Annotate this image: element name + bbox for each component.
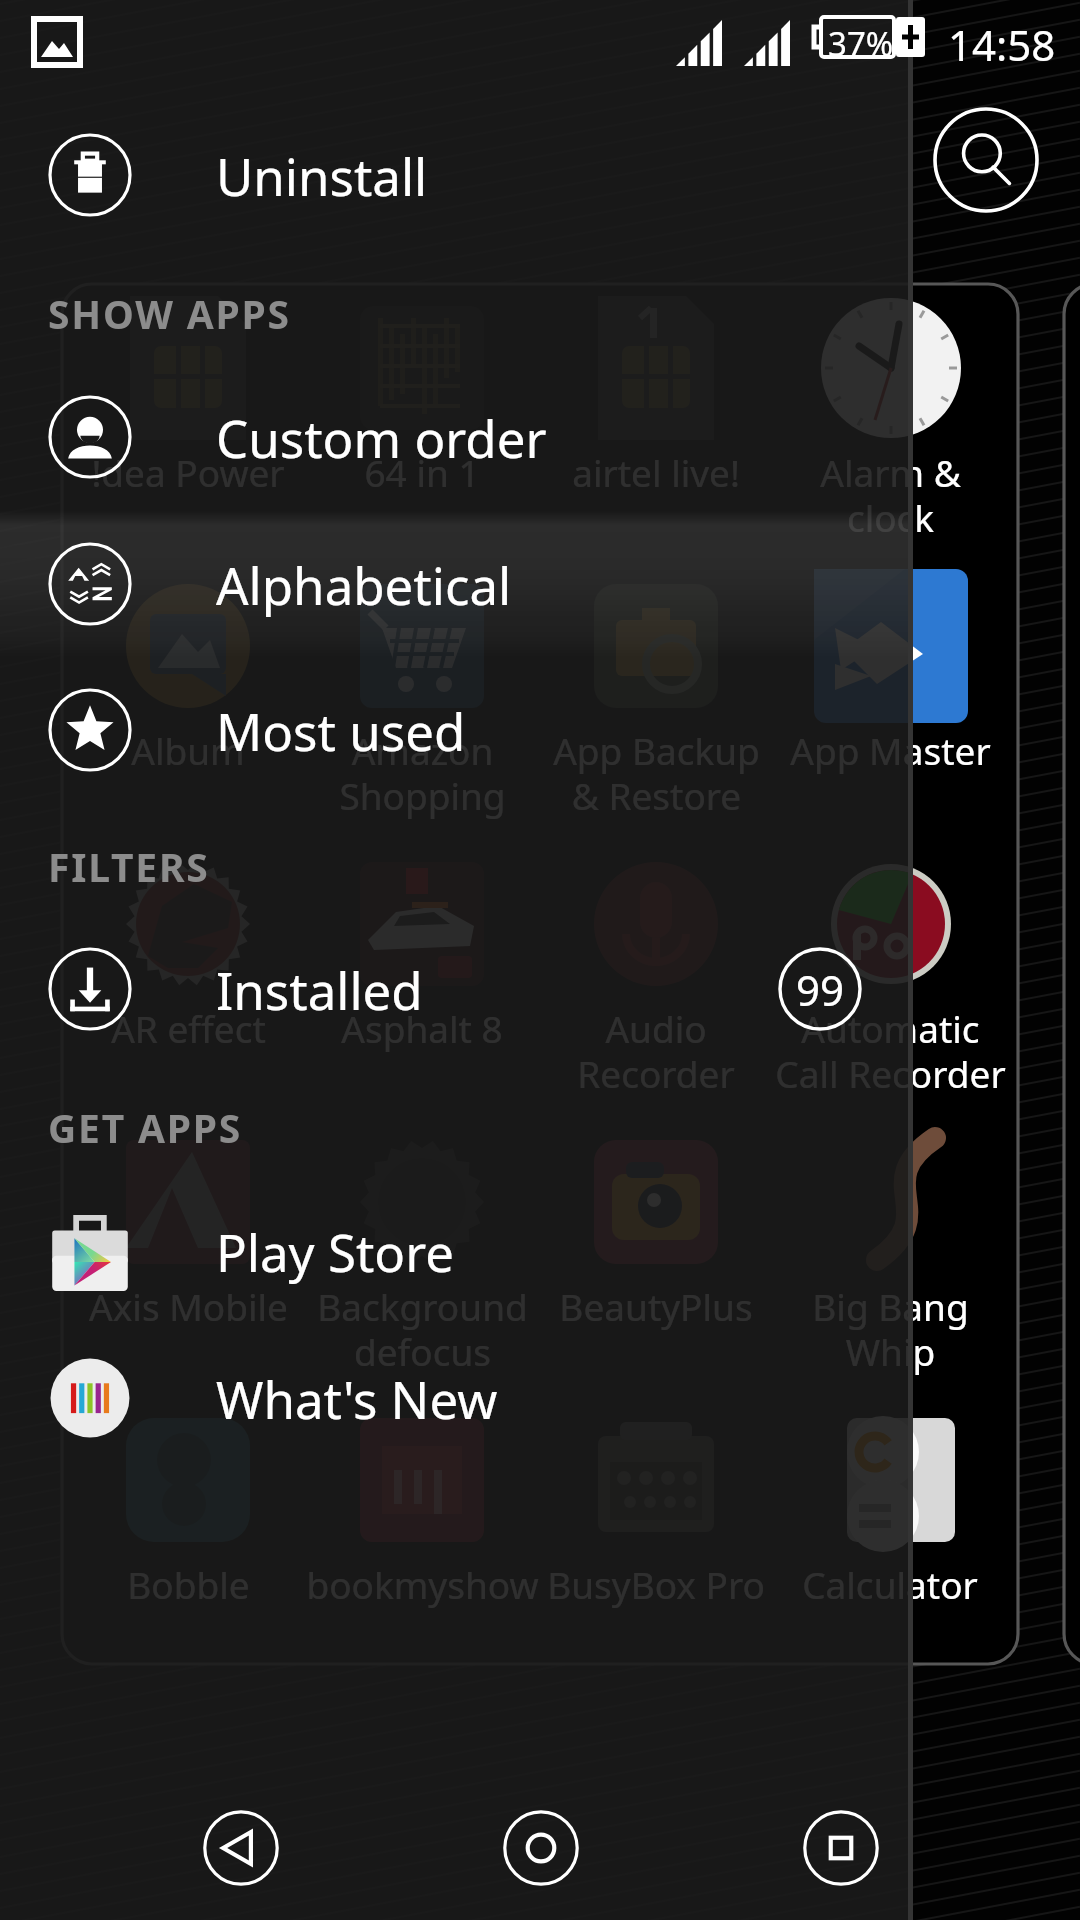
staticText: Alphabetical bbox=[216, 550, 512, 619]
button[interactable]: Recents bbox=[803, 1810, 879, 1886]
staticText: 37% bbox=[828, 21, 894, 66]
staticText: Bobble bbox=[127, 1559, 250, 1609]
staticText: App Backup & Restore bbox=[553, 725, 760, 821]
staticText: Uninstall bbox=[216, 141, 428, 210]
staticText: BeautyPlus bbox=[559, 1281, 753, 1331]
staticText: Alarm & clock bbox=[820, 447, 961, 543]
staticText: 64 in 1 bbox=[364, 447, 480, 497]
staticText: App Master bbox=[790, 725, 991, 775]
staticText: Axis Mobile bbox=[89, 1281, 288, 1331]
button[interactable]: Play Store bbox=[0, 1178, 908, 1324]
button[interactable]: Most used bbox=[0, 657, 908, 803]
staticText: Asphalt 8 bbox=[341, 1003, 503, 1053]
staticText: SHOW APPS bbox=[48, 287, 291, 340]
staticText: !dea Power bbox=[91, 447, 285, 497]
staticText: AR effect bbox=[111, 1003, 266, 1053]
staticText: Play Store bbox=[216, 1217, 454, 1286]
staticText: Album bbox=[131, 725, 245, 775]
button[interactable]: Custom order bbox=[0, 364, 908, 510]
staticText: FILTERS bbox=[48, 840, 210, 893]
button[interactable]: Installed bbox=[0, 916, 908, 1062]
staticText: What's New bbox=[216, 1364, 498, 1433]
staticText: Installed bbox=[216, 955, 423, 1024]
staticText: airtel live! bbox=[572, 447, 740, 497]
button[interactable]: What's New bbox=[0, 1325, 908, 1471]
staticText: Background defocus bbox=[317, 1281, 528, 1377]
button[interactable]: Back bbox=[203, 1810, 279, 1886]
staticText: 99 bbox=[796, 961, 845, 1018]
button[interactable]: Search bbox=[932, 106, 1040, 214]
staticText: Audio Recorder bbox=[577, 1003, 735, 1099]
staticText: Automatic Call Recorder bbox=[775, 1003, 1006, 1099]
staticText: Calculator bbox=[802, 1559, 978, 1609]
staticText: GET APPS bbox=[48, 1101, 243, 1154]
staticText: BusyBox Pro bbox=[547, 1559, 765, 1609]
staticText: Custom order bbox=[216, 403, 547, 472]
staticText: Most used bbox=[216, 696, 466, 765]
button[interactable]: Home bbox=[503, 1810, 579, 1886]
staticText: Big Bang Whip bbox=[812, 1281, 969, 1377]
button[interactable]: Alphabetical bbox=[0, 511, 908, 657]
staticText: 14:58 bbox=[948, 16, 1056, 73]
staticText: bookmyshow bbox=[306, 1559, 539, 1609]
staticText: Amazon Shopping bbox=[339, 725, 506, 821]
button[interactable]: Uninstall bbox=[0, 102, 908, 248]
